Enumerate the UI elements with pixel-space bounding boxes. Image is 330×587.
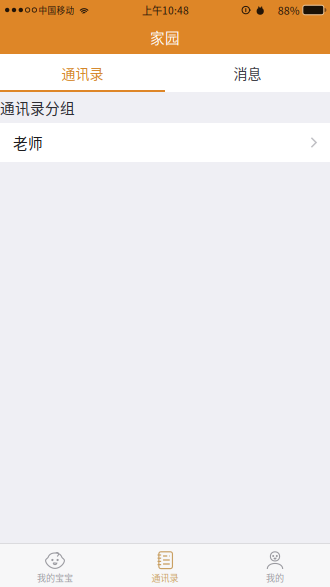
staticText: 上午10:48 xyxy=(142,3,189,17)
staticText: 我的宝宝 xyxy=(37,571,73,584)
button[interactable]: 通讯录 xyxy=(110,543,220,587)
staticText: 通讯录分组 xyxy=(0,97,75,118)
staticText: 中国移动 xyxy=(39,4,75,16)
staticText: 88% xyxy=(278,2,300,18)
button[interactable]: 老师 xyxy=(0,123,330,162)
button[interactable]: 消息 xyxy=(165,54,330,92)
button[interactable]: 我的宝宝 xyxy=(0,543,110,587)
staticText: 通讯录 xyxy=(61,63,103,83)
staticText: 消息 xyxy=(233,63,261,83)
button[interactable]: 我的 xyxy=(220,543,330,587)
staticText: 通讯录 xyxy=(151,571,178,584)
button[interactable]: 通讯录 xyxy=(0,54,165,92)
staticText: 我的 xyxy=(266,571,284,584)
staticText: 老师 xyxy=(13,132,43,153)
staticText: 家园 xyxy=(150,26,180,48)
